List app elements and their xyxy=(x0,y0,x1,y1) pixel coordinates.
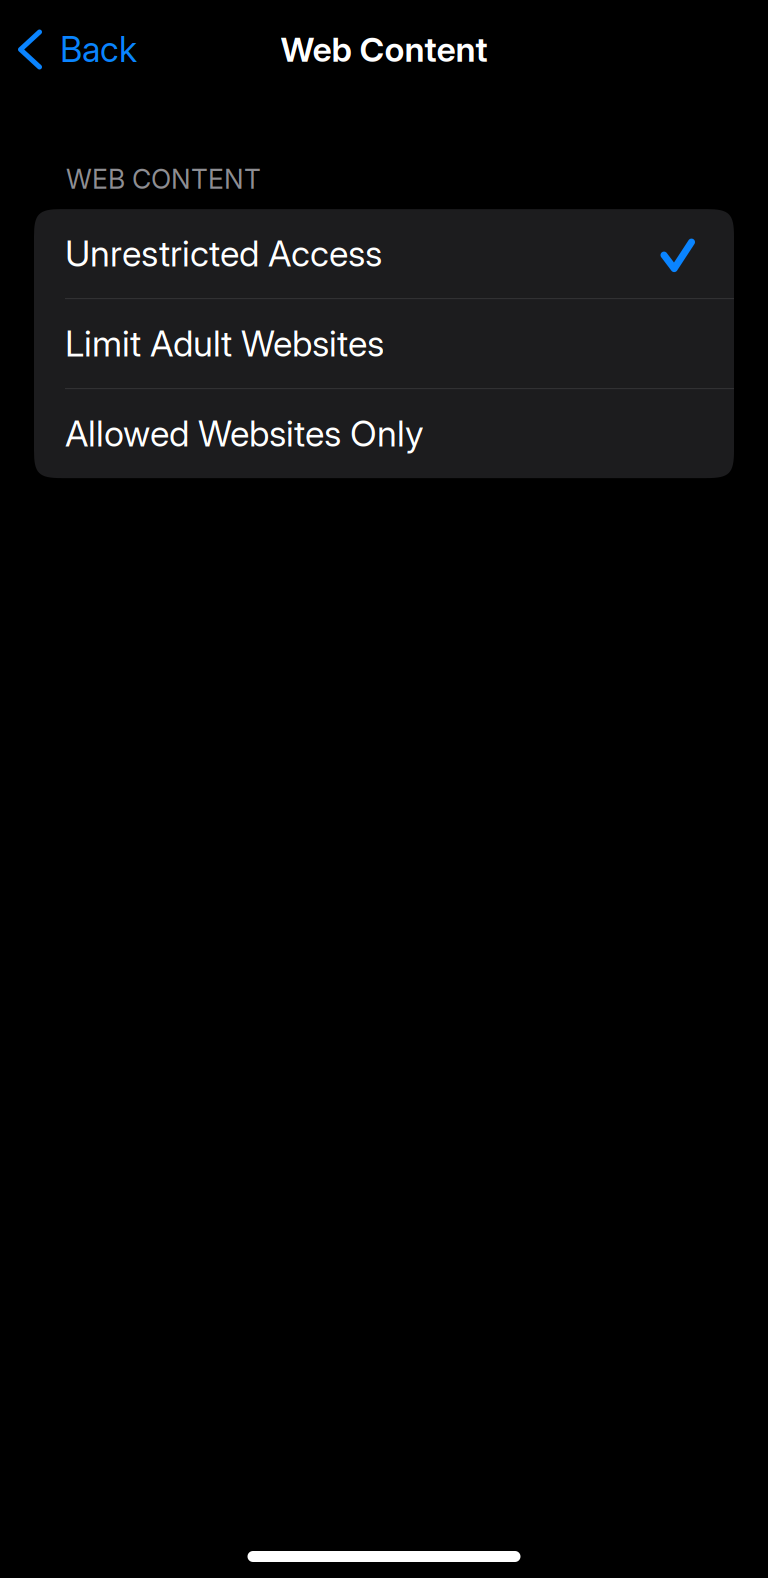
staticText: Limit Adult Websites xyxy=(65,322,384,365)
button[interactable]: Unrestricted Access xyxy=(34,209,734,298)
button[interactable]: Allowed Websites Only xyxy=(34,389,734,478)
staticText: Web Content xyxy=(280,29,487,70)
button[interactable]: Back xyxy=(0,22,147,76)
staticText: WEB CONTENT xyxy=(66,163,261,195)
button[interactable]: Limit Adult Websites xyxy=(34,299,734,388)
staticText: Unrestricted Access xyxy=(65,232,382,275)
staticText: Allowed Websites Only xyxy=(65,412,424,455)
staticText: Back xyxy=(60,28,137,70)
